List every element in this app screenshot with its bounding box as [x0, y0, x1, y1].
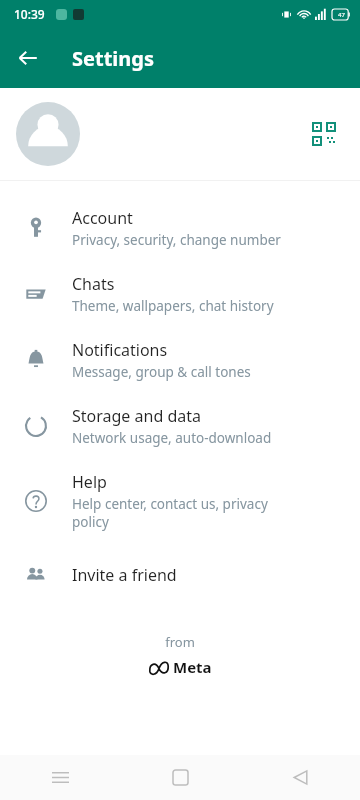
staticText: Help center, contact us, privacy policy: [72, 495, 268, 531]
staticText: Account: [72, 207, 133, 229]
staticText: Chats: [72, 273, 115, 295]
button[interactable]: Storage and data: [0, 393, 360, 459]
button[interactable]: Chats: [0, 261, 360, 327]
button[interactable]: Invite a friend: [0, 543, 360, 607]
staticText: 47: [338, 11, 345, 19]
staticText: 10:39: [14, 6, 45, 22]
button[interactable]: Notifications: [0, 327, 360, 393]
staticText: Network usage, auto-download: [72, 429, 272, 447]
staticText: Notifications: [72, 339, 168, 361]
staticText: Theme, wallpapers, chat history: [72, 297, 274, 315]
staticText: Message, group & call tones: [72, 363, 251, 381]
button[interactable]: Help: [0, 459, 360, 543]
staticText: Help: [72, 471, 107, 493]
button[interactable]: Account: [0, 195, 360, 261]
button[interactable]: Back: [240, 755, 360, 800]
staticText: Settings: [72, 45, 154, 72]
staticText: Storage and data: [72, 405, 201, 427]
button[interactable]: QR code: [304, 114, 344, 154]
staticText: from: [165, 633, 195, 651]
button[interactable]: Back: [8, 38, 48, 78]
staticText: Meta: [173, 657, 212, 677]
button[interactable]: QR code: [0, 88, 360, 180]
button[interactable]: Home: [120, 755, 240, 800]
button[interactable]: Recent apps: [0, 755, 120, 800]
staticText: Invite a friend: [72, 564, 177, 586]
staticText: Privacy, security, change number: [72, 231, 281, 249]
